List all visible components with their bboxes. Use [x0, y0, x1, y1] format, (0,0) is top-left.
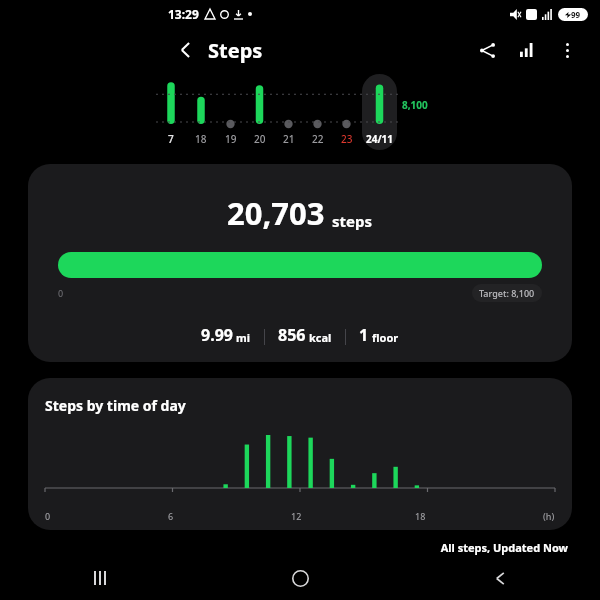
button[interactable]: 20,703 — [28, 164, 572, 362]
staticText: 23 — [341, 132, 353, 146]
staticText: steps — [332, 211, 373, 231]
button[interactable]: 20 — [245, 72, 274, 152]
button[interactable]: 22 — [303, 72, 332, 152]
staticText: Steps — [208, 37, 263, 64]
staticText: floor — [372, 330, 399, 345]
staticText: kcal — [309, 330, 332, 345]
button[interactable]: Back — [172, 36, 200, 64]
button[interactable]: Share — [472, 35, 502, 65]
button[interactable]: 18 — [186, 72, 216, 152]
staticText: 20,703 — [227, 192, 325, 234]
button[interactable]: More options — [552, 35, 582, 65]
staticText: 99 — [571, 9, 581, 20]
button[interactable]: Steps by time of day — [28, 378, 572, 530]
button[interactable]: Back — [400, 556, 600, 600]
staticText: 0 — [58, 287, 64, 299]
staticText: 21 — [283, 132, 295, 146]
button[interactable]: Home — [200, 556, 400, 600]
button[interactable]: 7 — [156, 72, 186, 152]
staticText: mi — [236, 330, 251, 345]
staticText: 9.99 — [201, 324, 233, 346]
staticText: 1 — [359, 324, 369, 346]
staticText: 24/11 — [366, 132, 394, 146]
staticText: 8,100 — [402, 98, 428, 112]
button[interactable]: Recent apps — [0, 556, 200, 600]
staticText: 22 — [312, 132, 324, 146]
staticText: 13:29 — [168, 6, 199, 22]
staticText: 12 — [291, 510, 302, 522]
staticText: 19 — [225, 132, 237, 146]
button[interactable]: 19 — [216, 72, 245, 152]
button[interactable]: Chart — [512, 35, 542, 65]
staticText: All steps, Updated Now — [0, 540, 568, 555]
staticText: 6 — [168, 510, 174, 522]
staticText: 0 — [45, 510, 51, 522]
staticText: 20 — [254, 132, 266, 146]
staticText: 18 — [415, 510, 426, 522]
staticText: Steps by time of day — [45, 396, 186, 415]
staticText: 7 — [168, 132, 174, 146]
button[interactable]: 23 — [332, 72, 361, 152]
button[interactable]: 21 — [274, 72, 303, 152]
staticText: (h) — [543, 510, 555, 522]
button[interactable]: 24/11 — [361, 72, 398, 152]
staticText: Target: 8,100 — [479, 287, 535, 299]
staticText: 18 — [195, 132, 207, 146]
staticText: 856 — [278, 324, 306, 346]
